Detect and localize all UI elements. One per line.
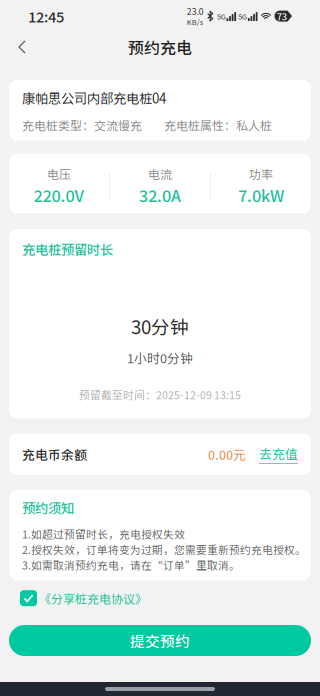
staticText: 电流 — [148, 165, 172, 183]
staticText: 去充值 — [259, 444, 298, 463]
staticText: 电压 — [47, 165, 71, 183]
staticText: 5G — [238, 11, 247, 22]
staticText: 7.0kW — [238, 184, 284, 207]
staticText: 30分钟 — [131, 312, 189, 339]
staticText: 1.如超过预留时长，充电授权失效 — [22, 526, 185, 542]
button[interactable]: 去充值 — [259, 444, 298, 464]
staticText: KB/s — [187, 16, 203, 27]
staticText: 23.0 — [187, 5, 204, 17]
staticText: 功率 — [249, 165, 273, 183]
staticText: 73 — [277, 9, 287, 23]
staticText: 3.如需取消预约充电，请在“订单”里取消。 — [22, 557, 240, 572]
staticText: 《分享桩充电协议》 — [39, 589, 147, 607]
button[interactable]: Back — [6, 31, 38, 63]
staticText: 充电桩预留时长 — [22, 239, 113, 258]
staticText: 0.00元 — [208, 445, 246, 463]
staticText: 充电桩属性：私人桩 — [164, 116, 272, 134]
staticText: 预约须知 — [22, 498, 74, 517]
staticText: 充电币余额 — [22, 445, 87, 463]
button[interactable]: 《分享桩充电协议》 — [20, 589, 147, 607]
staticText: 1小时0分钟 — [127, 349, 193, 367]
staticText: 5G — [217, 11, 226, 22]
staticText: 2.授权失效，订单将变为过期，您需要重新预约充电授权。 — [22, 542, 306, 557]
staticText: 12:45 — [28, 5, 64, 27]
staticText: 预约充电 — [128, 35, 192, 59]
staticText: 提交预约 — [130, 630, 190, 651]
button[interactable]: 提交预约 — [9, 625, 311, 656]
staticText: 预留截至时间：2025-12-09 13:15 — [79, 387, 241, 402]
staticText: 32.0A — [139, 184, 181, 207]
staticText: 220.0V — [33, 184, 84, 207]
staticText: 充电桩类型：交流慢充 — [22, 116, 142, 134]
staticText: 康帕思公司内部充电桩04 — [22, 88, 166, 107]
